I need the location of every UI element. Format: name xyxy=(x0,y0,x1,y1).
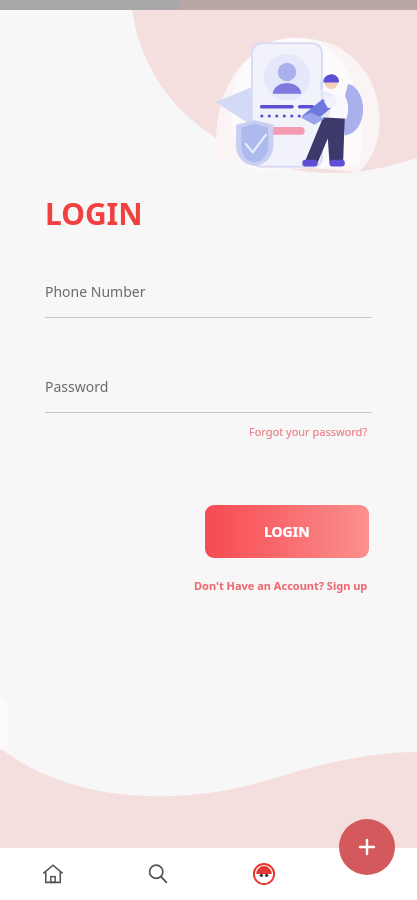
button[interactable]: Search xyxy=(105,848,211,900)
staticText: Forgot your password? xyxy=(249,424,368,439)
staticText: LOGIN xyxy=(264,522,310,541)
staticText: Don't Have an Account? Sign up xyxy=(194,578,368,593)
button[interactable]: Password xyxy=(45,377,372,413)
button[interactable]: Don't Have an Account? Sign up xyxy=(190,574,372,597)
button[interactable]: Home xyxy=(0,848,105,900)
staticText: Password xyxy=(45,377,109,396)
staticText: LOGIN xyxy=(45,193,143,234)
button[interactable]: Forgot your password? xyxy=(245,420,372,443)
button[interactable]: Phone Number xyxy=(45,282,372,318)
staticText: Phone Number xyxy=(45,282,146,301)
button[interactable]: Add xyxy=(339,819,395,875)
button[interactable]: LOGIN xyxy=(205,505,369,558)
button[interactable]: Profile xyxy=(211,848,317,900)
